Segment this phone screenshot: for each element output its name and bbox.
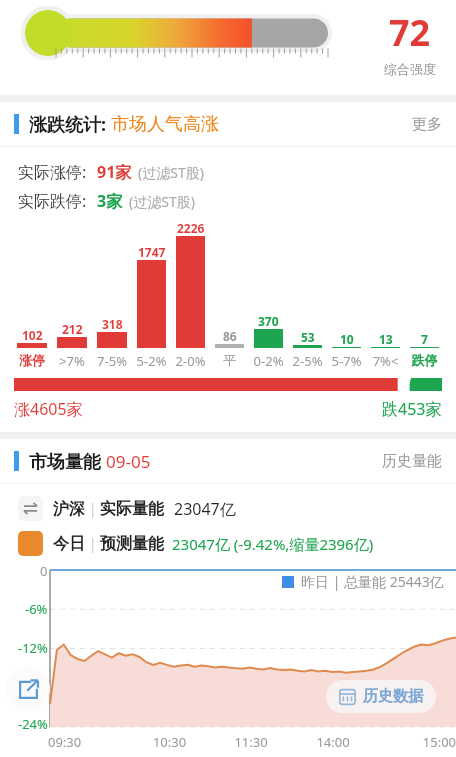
staticText: 实际量能 (100, 499, 164, 519)
staticText: 0 (40, 562, 48, 580)
staticText: | (85, 499, 100, 518)
staticText: 14:00 (292, 733, 374, 751)
staticText: 23047亿 (174, 498, 236, 520)
staticText: (过滤ST股) (138, 163, 204, 182)
staticText: 市场量能 (29, 449, 106, 474)
staticText: 涨跌统计: (29, 112, 111, 137)
staticText: 91家 (97, 161, 132, 183)
staticText: 7 (421, 331, 428, 347)
button[interactable]: 今日 (0, 531, 456, 556)
staticText: 历史数据 (363, 687, 423, 706)
staticText: 综合强度 (384, 61, 436, 77)
staticText: 7%< (366, 352, 405, 370)
staticText: 2-0% (171, 352, 210, 370)
staticText: 涨停 (12, 352, 52, 368)
staticText: -18% (18, 677, 48, 695)
staticText: 7-5% (92, 352, 132, 370)
staticText: 5-2% (132, 352, 171, 370)
staticText: 102 (22, 327, 43, 343)
staticText: -6% (25, 600, 48, 618)
staticText: 昨日 | 总量能 25443亿 (301, 572, 444, 591)
staticText: 370 (258, 313, 279, 329)
staticText: 涨4605家 (14, 398, 83, 420)
staticText: -12% (18, 639, 48, 657)
staticText: (过滤ST股) (129, 192, 195, 211)
staticText: 23047亿 (-9.42%,缩量2396亿) (172, 534, 374, 554)
staticText: 09:30 (48, 733, 129, 751)
button[interactable]: 涨跌统计: (0, 102, 456, 146)
button[interactable]: 市场量能 (0, 439, 456, 483)
staticText: 1747 (138, 244, 166, 260)
staticText: 72 (389, 8, 431, 57)
button[interactable]: Share (6, 667, 50, 711)
staticText: 11:30 (210, 733, 292, 751)
staticText: 历史量能 (382, 452, 442, 471)
staticText: 平 (210, 352, 249, 368)
staticText: 跌停 (405, 352, 444, 368)
staticText: 2-5% (288, 352, 327, 370)
staticText: 318 (102, 316, 123, 332)
staticText: 沪深 (53, 499, 85, 519)
staticText: 86 (223, 328, 237, 344)
staticText: 15:00 (374, 733, 456, 751)
button[interactable]: 沪深 (0, 496, 456, 521)
staticText: 实际涨停: (18, 161, 87, 183)
staticText: 53 (301, 329, 315, 345)
staticText: 10 (340, 331, 354, 347)
staticText: 0-2% (249, 352, 288, 370)
button[interactable]: 历史数据 (326, 680, 436, 713)
staticText: 实际跌停: (18, 190, 87, 212)
staticText: 市场人气高涨 (111, 113, 219, 136)
staticText: 3家 (97, 190, 123, 212)
staticText: 跌453家 (382, 398, 442, 420)
staticText: 13 (379, 331, 393, 347)
staticText: 今日 (53, 534, 85, 554)
staticText: 5-7% (327, 352, 366, 370)
staticText: 212 (62, 321, 83, 337)
staticText: >7% (52, 352, 92, 370)
staticText: 10:30 (129, 733, 210, 751)
staticText: 2226 (177, 220, 205, 236)
staticText: 更多 (412, 115, 442, 134)
staticText: | (85, 534, 100, 553)
staticText: 预测量能 (100, 534, 164, 554)
staticText: -24% (18, 715, 48, 733)
staticText: 09-05 (106, 450, 151, 473)
